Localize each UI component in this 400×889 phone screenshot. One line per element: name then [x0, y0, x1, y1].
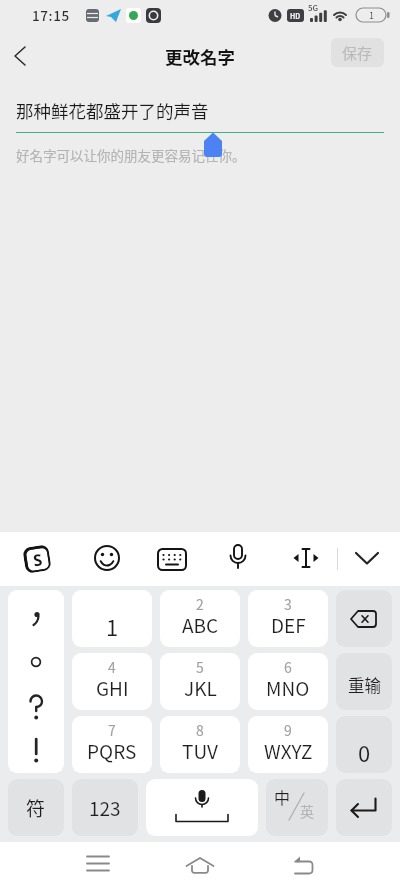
staticText: 6 [284, 657, 292, 677]
button[interactable] [4, 38, 40, 74]
button[interactable]: 4 [72, 653, 152, 710]
staticText: 4 [108, 657, 116, 677]
button[interactable]: 8 [160, 716, 240, 773]
staticText: HD [290, 11, 301, 21]
button[interactable] [292, 546, 320, 572]
button[interactable]: 3 [248, 590, 328, 647]
staticText: 0 [358, 736, 371, 765]
button[interactable]: 符 [8, 779, 64, 836]
button[interactable]: 2 [160, 590, 240, 647]
staticText: 2 [196, 594, 204, 614]
staticText: ABC [182, 611, 219, 639]
staticText: 5 [196, 657, 204, 677]
staticText: 更改名字 [165, 44, 235, 69]
button[interactable] [158, 545, 186, 573]
button[interactable]: 7 [72, 716, 152, 773]
button[interactable] [354, 550, 380, 568]
staticText: 1 [369, 9, 374, 22]
staticText: WXYZ [264, 737, 313, 765]
button[interactable]: S [22, 544, 52, 574]
button[interactable]: 123 [72, 779, 138, 836]
button[interactable] [8, 590, 64, 773]
button[interactable] [84, 851, 112, 879]
button[interactable] [227, 544, 249, 574]
button[interactable] [186, 851, 214, 879]
button[interactable]: 6 [248, 653, 328, 710]
button[interactable] [336, 590, 392, 647]
button[interactable]: 1 [72, 590, 152, 647]
staticText: 符 [26, 794, 46, 822]
staticText: 8 [196, 720, 204, 740]
staticText: 17:15 [32, 5, 70, 25]
button[interactable] [93, 545, 121, 573]
button[interactable]: 重输 [336, 653, 392, 710]
button[interactable]: 中 [266, 779, 328, 836]
staticText: 1 [106, 610, 119, 639]
staticText: 保存 [342, 42, 373, 64]
staticText: 3 [284, 594, 292, 614]
staticText: TUV [182, 737, 218, 765]
button[interactable]: 0 [336, 716, 392, 773]
staticText: 英 [300, 801, 314, 821]
button[interactable] [336, 779, 392, 836]
staticText: GHI [96, 674, 129, 702]
staticText: 中 [274, 785, 291, 808]
button[interactable] [146, 779, 258, 836]
staticText: 那种鲜花都盛开了的声音 [16, 98, 209, 123]
button[interactable] [288, 852, 314, 878]
staticText: JKL [184, 674, 217, 702]
button[interactable]: 9 [248, 716, 328, 773]
staticText: 5G [308, 2, 319, 12]
staticText: PQRS [87, 737, 137, 765]
button[interactable]: 5 [160, 653, 240, 710]
staticText: 重输 [348, 673, 381, 697]
staticText: 7 [108, 720, 116, 740]
staticText: 好名字可以让你的朋友更容易记住你。 [16, 145, 246, 165]
staticText: 9 [284, 720, 292, 740]
staticText: MNO [266, 674, 310, 702]
staticText: DEF [271, 611, 306, 639]
staticText: 123 [89, 794, 121, 822]
button[interactable]: 保存 [331, 38, 384, 67]
staticText: S [31, 548, 44, 570]
